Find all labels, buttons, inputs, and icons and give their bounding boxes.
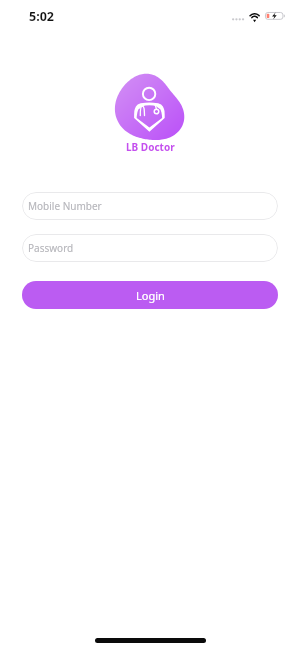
button[interactable]: Mobile Number bbox=[22, 192, 278, 220]
button[interactable]: Password bbox=[22, 234, 278, 262]
staticText: LB Doctor bbox=[126, 140, 175, 154]
staticText: Mobile Number bbox=[28, 199, 102, 213]
staticText: Login bbox=[136, 288, 165, 303]
button[interactable]: Login bbox=[22, 281, 278, 309]
staticText: 5:02 bbox=[29, 8, 54, 25]
staticText: Password bbox=[28, 241, 74, 255]
